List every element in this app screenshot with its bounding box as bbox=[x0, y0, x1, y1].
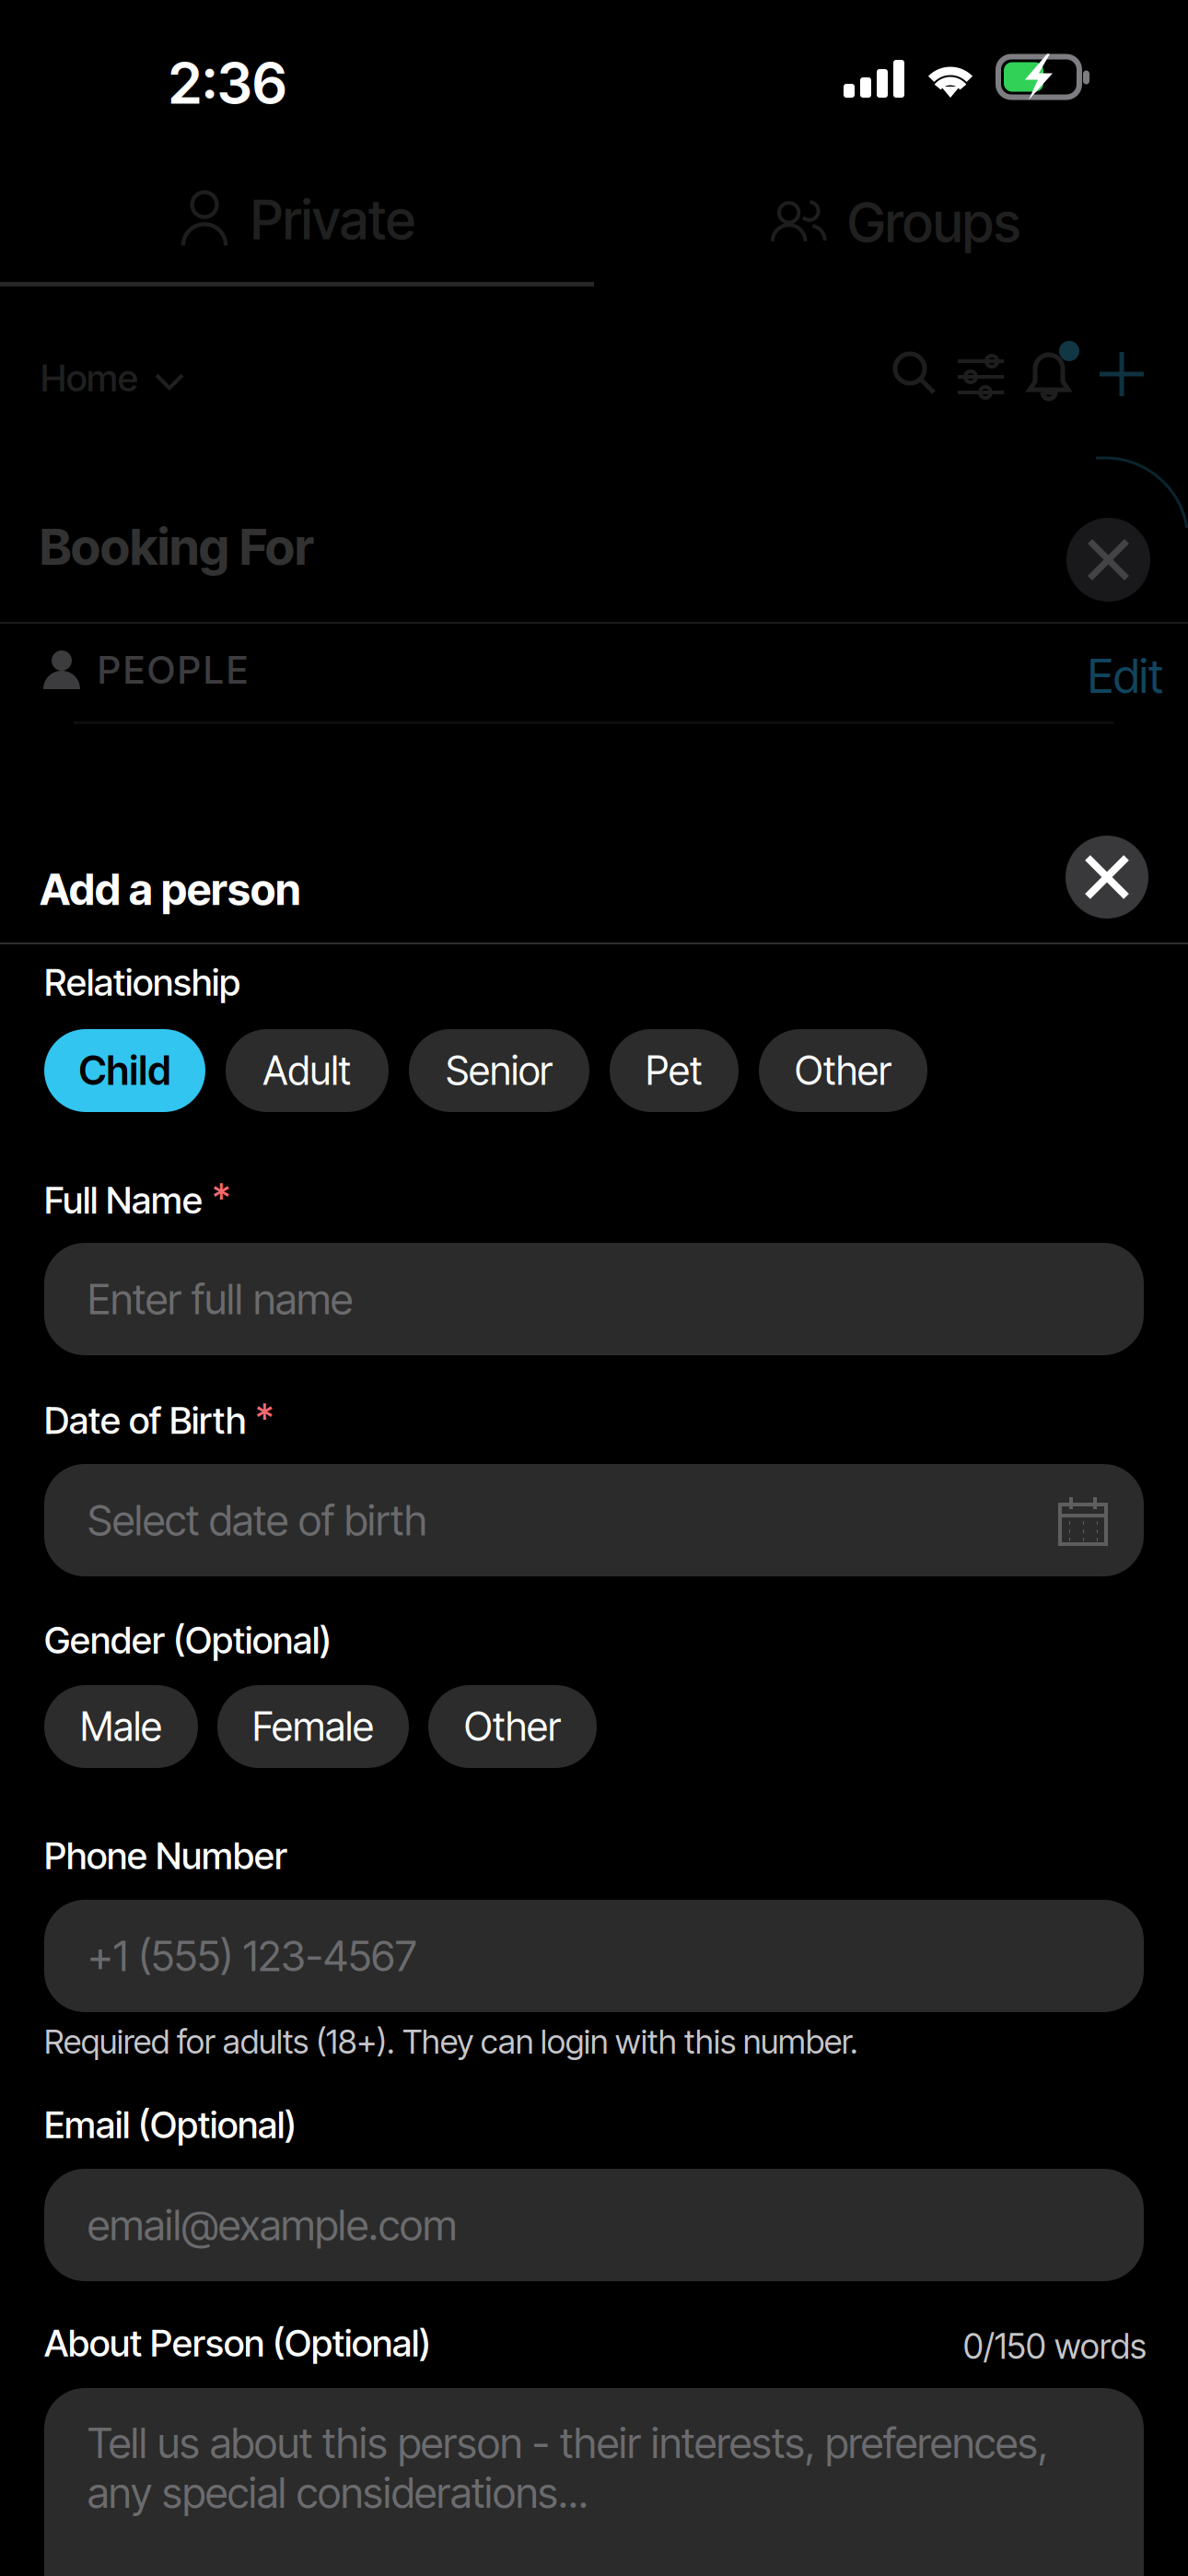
button[interactable]: Other bbox=[759, 1029, 927, 1112]
staticText: Phone Number bbox=[44, 1833, 287, 1878]
staticText: Enter full name bbox=[87, 1274, 353, 1324]
button[interactable]: Close booking bbox=[1066, 518, 1150, 602]
staticText: Private bbox=[250, 187, 415, 252]
button[interactable]: Home bbox=[41, 356, 184, 400]
staticText: Female bbox=[252, 1703, 374, 1750]
button[interactable]: Add bbox=[1100, 352, 1144, 396]
staticText: Select date of birth bbox=[87, 1495, 427, 1546]
staticText: Date of Birth bbox=[44, 1398, 246, 1443]
button[interactable]: Notifications bbox=[1026, 348, 1074, 402]
staticText: * bbox=[255, 1395, 274, 1442]
staticText: +1 (555) 123-4567 bbox=[87, 1931, 416, 1981]
staticText: About Person (Optional) bbox=[44, 2321, 431, 2365]
button[interactable]: +1 (555) 123-4567 bbox=[44, 1900, 1144, 2012]
staticText: Other bbox=[464, 1703, 561, 1750]
staticText: 2:36 bbox=[169, 49, 286, 117]
staticText: 0/150 words bbox=[963, 2325, 1147, 2367]
staticText: email@example.com bbox=[87, 2200, 457, 2250]
button[interactable]: Child bbox=[44, 1029, 205, 1112]
button[interactable]: Edit bbox=[1088, 648, 1163, 704]
staticText: Pet bbox=[646, 1047, 703, 1094]
button[interactable]: Senior bbox=[409, 1029, 589, 1112]
button[interactable]: Search bbox=[891, 350, 939, 400]
staticText: Full Name bbox=[44, 1178, 203, 1223]
button[interactable]: Other bbox=[428, 1685, 597, 1768]
staticText: * bbox=[212, 1175, 230, 1222]
staticText: Other bbox=[795, 1047, 891, 1094]
staticText: Groups bbox=[847, 190, 1020, 255]
staticText: Adult bbox=[263, 1047, 351, 1094]
button[interactable]: Pet bbox=[610, 1029, 739, 1112]
staticText: PEOPLE bbox=[98, 647, 248, 693]
staticText: Edit bbox=[1088, 648, 1163, 704]
staticText: Tell us about this person - their intere… bbox=[87, 2418, 1048, 2468]
button[interactable]: Filters bbox=[958, 356, 1006, 400]
staticText: Booking For bbox=[40, 516, 314, 577]
staticText: Child bbox=[79, 1047, 171, 1094]
staticText: any special considerations... bbox=[87, 2467, 588, 2518]
button[interactable]: Female bbox=[217, 1685, 409, 1768]
button[interactable]: Close bbox=[1066, 836, 1148, 919]
button[interactable]: Groups bbox=[772, 190, 1020, 255]
staticText: Email (Optional) bbox=[44, 2102, 297, 2147]
staticText: Senior bbox=[446, 1047, 553, 1094]
staticText: Gender (Optional) bbox=[44, 1618, 332, 1662]
staticText: Home bbox=[41, 356, 138, 400]
button[interactable]: Male bbox=[44, 1685, 198, 1768]
button[interactable]: Private bbox=[181, 187, 415, 252]
button[interactable]: Enter full name bbox=[44, 1243, 1144, 1355]
staticText: Required for adults (18+). They can logi… bbox=[44, 2021, 858, 2062]
button[interactable]: Select date of birth bbox=[44, 1464, 1144, 1576]
staticText: Male bbox=[80, 1703, 162, 1750]
staticText: Relationship bbox=[44, 960, 240, 1005]
button[interactable]: email@example.com bbox=[44, 2169, 1144, 2281]
staticText: Add a person bbox=[40, 863, 301, 915]
button[interactable]: Adult bbox=[226, 1029, 389, 1112]
